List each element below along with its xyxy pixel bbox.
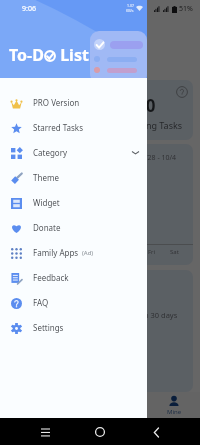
staticText: PRO Version [33,97,80,108]
button[interactable]: PRO Version [0,90,147,115]
staticText: Fri [148,248,156,256]
button[interactable]: Home [89,421,111,443]
staticText: in 30 days [142,310,178,320]
staticText: 51% [179,4,193,14]
staticText: 20 [136,94,156,117]
button[interactable]: Feedback [0,265,147,290]
staticText: (Ad) [82,249,94,257]
staticText: 1.07 [127,3,134,8]
button[interactable]: Settings [0,315,147,340]
staticText: Starred Tasks [33,122,83,133]
button[interactable]: Starred Tasks [0,115,147,140]
staticText: To-D [9,44,44,66]
button[interactable]: Mine [148,392,200,418]
button[interactable]: Family Apps [0,240,147,265]
staticText: Feedback [33,272,69,283]
button[interactable]: Category [0,140,147,165]
staticText: Mon [45,248,58,256]
staticText: 9:06 [22,4,36,14]
staticText: Widget [33,197,60,208]
button[interactable]: Recents [34,421,56,443]
staticText: Ongoing Tasks [120,119,183,131]
staticText: Settings [33,322,64,333]
staticText: Sat [170,248,179,256]
staticText: 9/28 - 10/4 [141,153,177,163]
button[interactable]: FAQ [0,290,147,315]
staticText: FAQ [33,297,49,308]
staticText: Donate [33,222,61,233]
staticText: Sun [20,248,31,256]
button[interactable]: Theme [0,165,147,190]
button[interactable]: Donate [0,215,147,240]
button[interactable]: Info [176,86,188,98]
staticText: Mine [167,408,182,416]
button[interactable]: Back [145,421,167,443]
staticText: Category [33,147,68,158]
staticText: List [56,44,89,66]
staticText: KB/s [126,8,134,13]
button[interactable]: Widget [0,190,147,215]
staticText: Tue [72,248,83,256]
staticText: Family Apps [33,247,79,258]
staticText: Theme [33,172,59,183]
